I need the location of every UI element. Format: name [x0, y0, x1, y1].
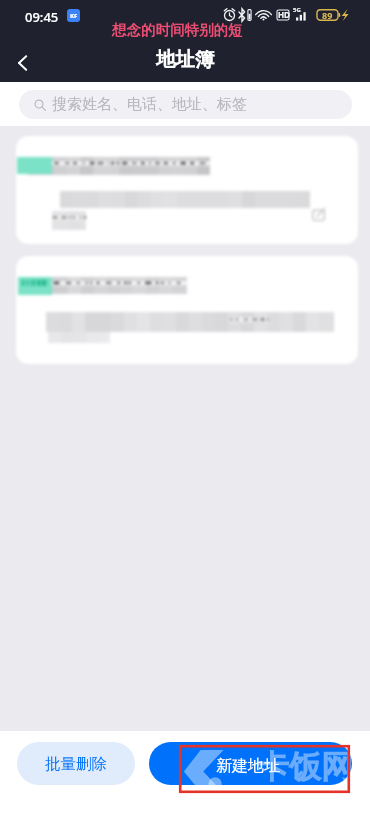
staticText: KF [70, 12, 78, 20]
staticText: 5G [293, 6, 301, 14]
staticText: 89 [322, 9, 333, 21]
staticText: 09:45 [25, 8, 59, 26]
button[interactable]: Edit [309, 204, 329, 224]
staticText: 卡饭网 [257, 747, 353, 787]
staticText: 地址簿 [156, 47, 215, 72]
button[interactable]: Edit [16, 136, 358, 244]
staticText: 新建地址 [216, 756, 280, 776]
button[interactable]: Back [4, 44, 42, 82]
staticText: 批量删除 [45, 754, 107, 774]
button[interactable] [16, 256, 358, 364]
staticText: HD [278, 9, 290, 20]
button[interactable]: 批量删除 [17, 742, 135, 785]
button[interactable] [149, 742, 352, 785]
staticText: 想念的时间特别的短 [112, 21, 243, 39]
button[interactable]: 搜索姓名、电话、地址、标签 [19, 90, 352, 119]
staticText: 搜索姓名、电话、地址、标签 [52, 95, 247, 114]
